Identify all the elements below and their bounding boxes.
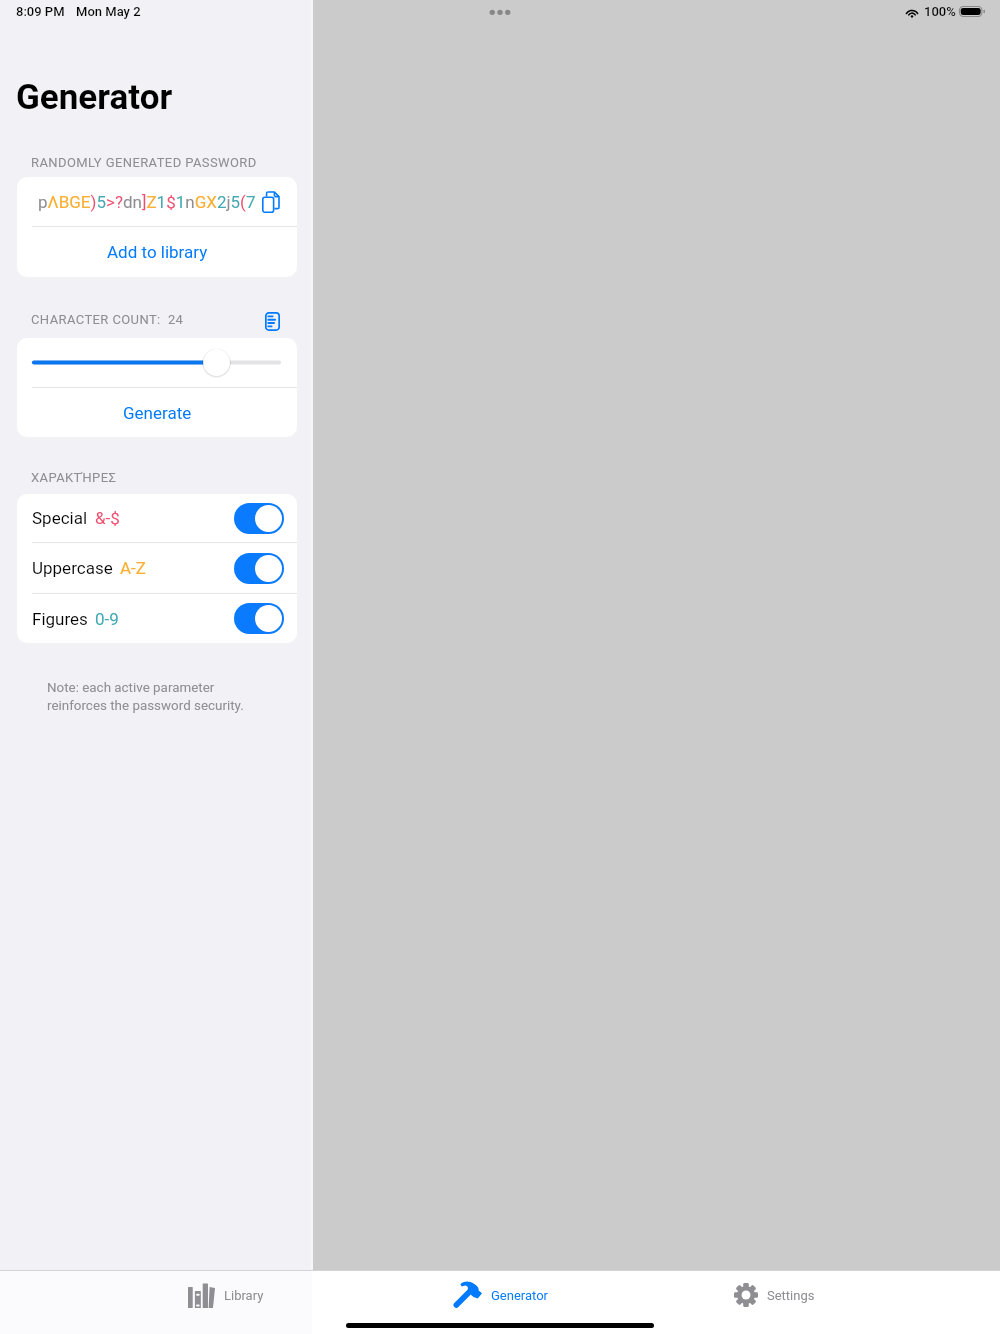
button[interactable]: Special xyxy=(17,494,297,542)
button[interactable]: Library xyxy=(89,1270,363,1320)
button[interactable]: Toggle Figures characters xyxy=(234,603,284,634)
staticText: Add to library xyxy=(107,242,208,262)
staticText: A-Z xyxy=(120,558,146,578)
button[interactable]: Toggle Special characters xyxy=(234,503,284,534)
staticText: Settings xyxy=(767,1288,815,1303)
staticText: CHARACTER COUNT: 24 xyxy=(31,312,184,327)
button[interactable]: Copy password xyxy=(260,191,280,213)
staticText: ΧΑΡΑΚΤΉΡΕΣ xyxy=(31,470,117,485)
button[interactable]: Add to library xyxy=(17,227,297,277)
staticText: 100% xyxy=(924,4,956,19)
staticText: Figures xyxy=(32,609,88,629)
staticText: Note: each active parameter reinforces t… xyxy=(47,680,244,713)
staticText: RANDOMLY GENERATED PASSWORD xyxy=(31,155,257,170)
button[interactable]: Uppercase xyxy=(17,543,297,593)
staticText: 8:09 PM xyxy=(16,4,65,19)
staticText: Generator xyxy=(16,77,173,118)
button[interactable]: Generate xyxy=(17,388,297,437)
button[interactable]: Figures xyxy=(17,594,297,643)
staticText: Generate xyxy=(123,403,192,423)
staticText: &-$ xyxy=(95,508,120,528)
staticText: 0-9 xyxy=(95,609,119,629)
button[interactable]: Generator xyxy=(363,1270,637,1320)
staticText: Library xyxy=(224,1288,264,1303)
button[interactable]: Toggle Uppercase characters xyxy=(234,553,284,584)
button[interactable]: Password history xyxy=(263,311,282,331)
button[interactable]: Settings xyxy=(637,1270,911,1320)
staticText: Generator xyxy=(491,1288,548,1303)
staticText: Special xyxy=(32,508,88,528)
staticText: Mon May 2 xyxy=(76,4,141,19)
staticText: Uppercase xyxy=(32,558,113,578)
staticText: pΛBGE)5>?dn]Z1$1nGX2j5(7 xyxy=(38,192,256,212)
